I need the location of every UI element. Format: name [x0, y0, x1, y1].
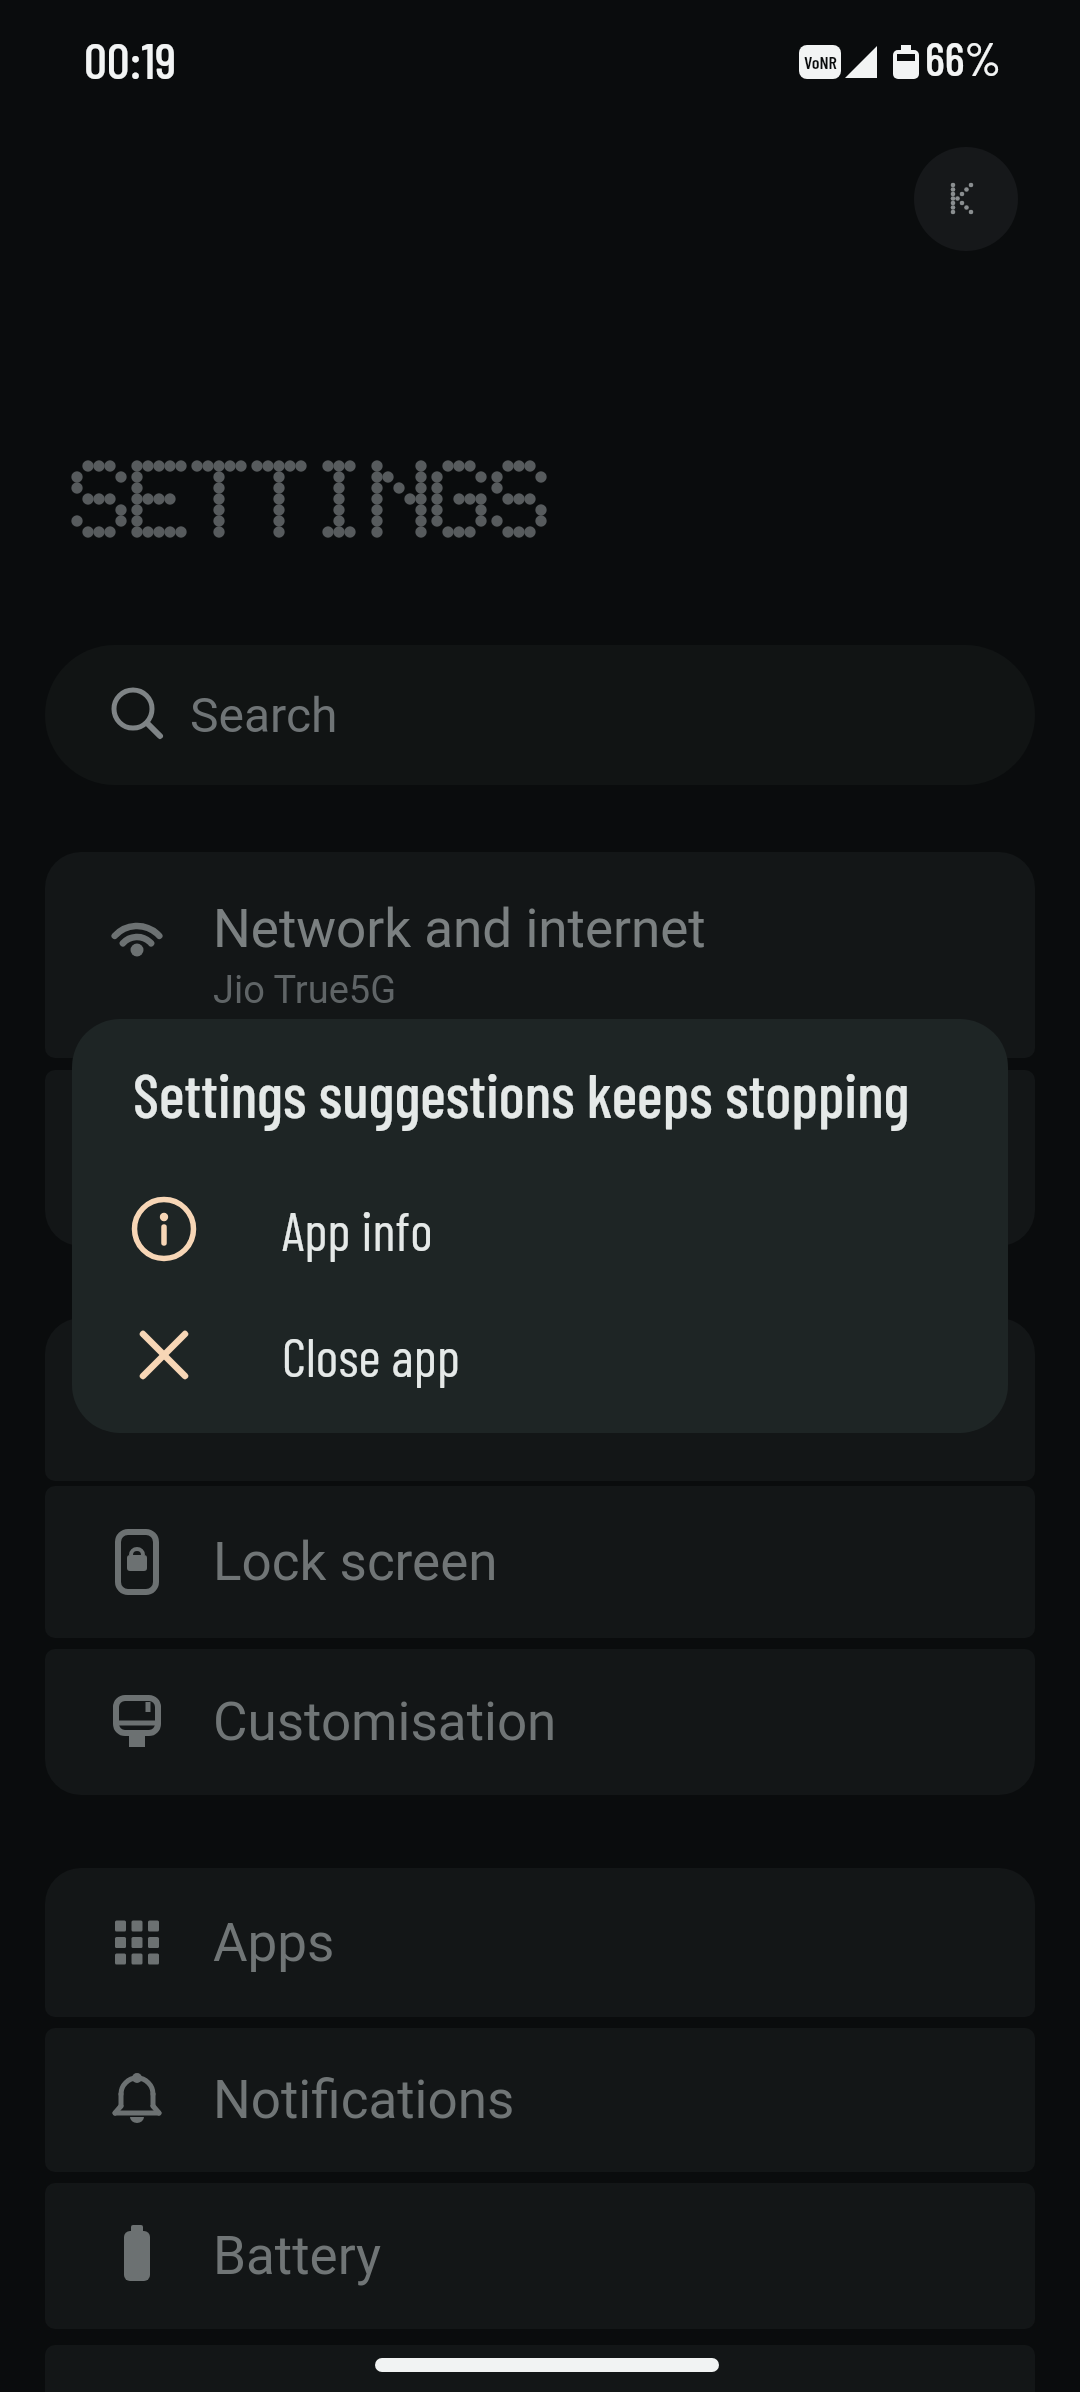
staticText: 66%	[925, 29, 1001, 85]
button[interactable]: Notifications	[45, 2028, 1035, 2172]
staticText: Apps	[213, 1912, 335, 1974]
button[interactable]: Customisation	[45, 1649, 1035, 1795]
button[interactable]	[45, 1070, 1035, 1246]
staticText: App info	[282, 1197, 433, 1262]
button[interactable]: Battery	[45, 2183, 1035, 2329]
button[interactable]: Close app	[72, 1297, 1008, 1413]
staticText: Notifications	[213, 2069, 515, 2131]
staticText: Lock screen	[213, 1531, 498, 1593]
staticText: Customisation	[213, 1691, 557, 1753]
button[interactable]: Search	[45, 645, 1035, 785]
staticText: Close app	[282, 1323, 460, 1388]
staticText: VoNR	[804, 51, 837, 73]
button[interactable]	[45, 1318, 1035, 1481]
staticText: Network and internet	[213, 898, 706, 960]
staticText: Battery	[213, 2225, 382, 2287]
button[interactable]	[914, 147, 1018, 251]
button[interactable]	[45, 2345, 1035, 2392]
staticText: Settings suggestions keeps stopping	[133, 1057, 910, 1130]
staticText: Search	[190, 687, 338, 743]
button[interactable]: Apps	[45, 1868, 1035, 2017]
button[interactable]: Lock screen	[45, 1486, 1035, 1638]
button[interactable]: App info	[72, 1171, 1008, 1287]
button[interactable]: Network and internet	[45, 852, 1035, 1058]
staticText: 00:19	[84, 28, 177, 89]
staticText: Jio True5G	[213, 968, 397, 1013]
